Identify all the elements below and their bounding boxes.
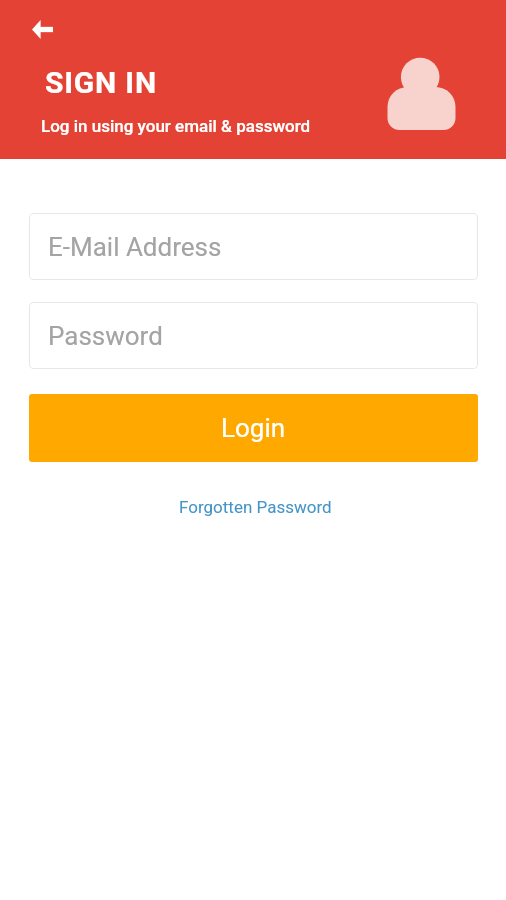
staticText: Password — [48, 321, 163, 351]
staticText: Forgotten Password — [179, 497, 332, 517]
button[interactable]: Forgotten Password — [169, 491, 342, 523]
staticText: Log in using your email & password — [41, 116, 311, 136]
button[interactable]: Back — [11, 8, 55, 52]
staticText: E-Mail Address — [48, 232, 222, 262]
button[interactable]: E-Mail Address — [29, 213, 478, 280]
staticText: Login — [221, 413, 286, 443]
button[interactable]: Password — [29, 302, 478, 369]
button[interactable]: Login — [29, 394, 478, 462]
staticText: SIGN IN — [45, 65, 157, 100]
